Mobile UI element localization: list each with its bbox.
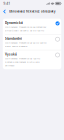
staticText: Obnovovací frekvence až 60 Hz zajistí (5, 41, 47, 44)
staticText: Obnovovací frekvence obrazovky (9, 10, 55, 13)
button[interactable]: Back (0, 7, 8, 16)
staticText: Dynamická (5, 21, 23, 25)
staticText: Obnovovací frekvence až 120 Hz (5, 57, 40, 60)
staticText: Obnovovací frekvence se automaticky (5, 25, 46, 28)
staticText: pomáhá zobrazovat plynulejší (5, 60, 40, 64)
staticText: animace (5, 64, 14, 67)
button[interactable]: Dynamická (3, 19, 61, 34)
button[interactable]: Standardní (3, 34, 61, 50)
staticText: Vysoká (5, 52, 17, 56)
staticText: delší výdrž baterie (5, 44, 27, 48)
staticText: Standardní (5, 36, 22, 41)
button[interactable]: Vysoká (3, 50, 61, 69)
staticText: 9:41 (3, 1, 10, 6)
staticText: přizpůsobí obsahu až do 120 Hz (5, 29, 44, 32)
